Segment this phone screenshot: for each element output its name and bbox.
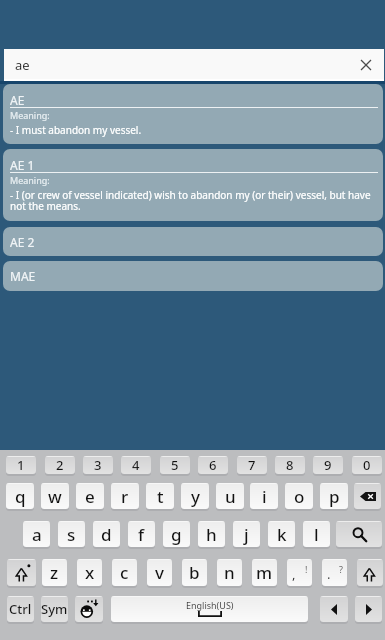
staticText: k: [277, 523, 287, 546]
button[interactable]: z: [42, 559, 67, 586]
button[interactable]: b: [182, 559, 207, 586]
staticText: 9: [324, 456, 332, 474]
button[interactable]: g: [163, 521, 190, 547]
button[interactable]: Move cursor left: [320, 596, 348, 622]
button[interactable]: 4: [121, 456, 151, 474]
staticText: c: [120, 561, 129, 584]
staticText: ?: [339, 563, 343, 575]
button[interactable]: d: [93, 521, 120, 547]
button[interactable]: s: [58, 521, 85, 547]
staticText: ae: [15, 56, 30, 74]
staticText: p: [329, 485, 340, 508]
button[interactable]: 5: [160, 456, 190, 474]
button[interactable]: n: [217, 559, 242, 586]
button[interactable]: c: [112, 559, 137, 586]
button[interactable]: i: [250, 483, 278, 509]
button[interactable]: Sym: [41, 596, 68, 622]
button[interactable]: AE 1: [3, 149, 383, 221]
staticText: 2: [56, 456, 64, 474]
staticText: .: [327, 565, 331, 583]
button[interactable]: 2: [45, 456, 75, 474]
button[interactable]: Search: [336, 521, 382, 547]
button[interactable]: m: [252, 559, 277, 586]
button[interactable]: q: [6, 483, 34, 509]
button[interactable]: MAE: [3, 261, 383, 291]
staticText: n: [224, 561, 235, 584]
staticText: x: [85, 561, 95, 584]
staticText: Meaning:: [10, 174, 50, 186]
button[interactable]: j: [233, 521, 260, 547]
staticText: j: [244, 523, 249, 546]
staticText: i: [262, 485, 267, 508]
staticText: u: [225, 485, 236, 508]
button[interactable]: 1: [6, 456, 36, 474]
button[interactable]: f: [128, 521, 155, 547]
staticText: 6: [209, 456, 217, 474]
button[interactable]: k: [268, 521, 295, 547]
button[interactable]: Space: [111, 596, 308, 622]
button[interactable]: 7: [237, 456, 267, 474]
button[interactable]: v: [147, 559, 172, 586]
staticText: AE 2: [10, 234, 35, 250]
staticText: m: [256, 561, 273, 584]
staticText: q: [15, 485, 26, 508]
staticText: g: [171, 523, 182, 546]
button[interactable]: t: [146, 483, 174, 509]
button[interactable]: a: [23, 521, 50, 547]
button[interactable]: x: [77, 559, 102, 586]
staticText: AE 1: [10, 157, 35, 173]
staticText: MAE: [10, 268, 36, 284]
button[interactable]: Shift: [7, 559, 36, 586]
button[interactable]: u: [216, 483, 244, 509]
button[interactable]: AE 2: [3, 227, 383, 256]
button[interactable]: Move cursor right: [355, 596, 382, 622]
staticText: f: [138, 523, 145, 546]
button[interactable]: AE: [3, 84, 383, 144]
staticText: - I must abandon my vessel.: [10, 123, 376, 137]
button[interactable]: ae: [4, 49, 384, 81]
button[interactable]: 0: [352, 456, 382, 474]
button[interactable]: h: [198, 521, 225, 547]
staticText: !: [305, 563, 308, 575]
button[interactable]: Emoji keyboard: [75, 596, 103, 622]
staticText: English(US): [186, 599, 234, 611]
button[interactable]: p: [320, 483, 348, 509]
staticText: - I (or crew of vessel indicated) wish t…: [10, 188, 376, 213]
button[interactable]: !: [287, 559, 312, 586]
staticText: ,: [292, 565, 296, 583]
button[interactable]: o: [285, 483, 313, 509]
staticText: 7: [248, 456, 256, 474]
button[interactable]: r: [111, 483, 139, 509]
button[interactable]: 9: [313, 456, 343, 474]
button[interactable]: Backspace: [354, 483, 381, 509]
staticText: 1: [17, 456, 25, 474]
staticText: t: [157, 485, 164, 508]
staticText: s: [67, 523, 76, 546]
staticText: r: [121, 485, 129, 508]
staticText: AE: [10, 92, 25, 108]
staticText: w: [48, 485, 62, 508]
staticText: 0: [363, 456, 371, 474]
button[interactable]: w: [41, 483, 69, 509]
button[interactable]: Shift: [357, 559, 383, 586]
button[interactable]: 6: [198, 456, 228, 474]
staticText: b: [189, 561, 200, 584]
button[interactable]: ?: [322, 559, 347, 586]
staticText: Sym: [41, 600, 68, 618]
staticText: o: [294, 485, 305, 508]
staticText: z: [50, 561, 59, 584]
staticText: 3: [94, 456, 102, 474]
staticText: v: [155, 561, 164, 584]
button[interactable]: l: [303, 521, 330, 547]
staticText: a: [32, 523, 42, 546]
staticText: l: [314, 523, 319, 546]
button[interactable]: 3: [83, 456, 113, 474]
staticText: h: [206, 523, 217, 546]
staticText: y: [191, 485, 200, 508]
button[interactable]: e: [76, 483, 104, 509]
staticText: 5: [171, 456, 179, 474]
button[interactable]: Clear search: [354, 53, 378, 77]
button[interactable]: 8: [275, 456, 305, 474]
button[interactable]: y: [181, 483, 209, 509]
button[interactable]: Ctrl: [7, 596, 34, 622]
